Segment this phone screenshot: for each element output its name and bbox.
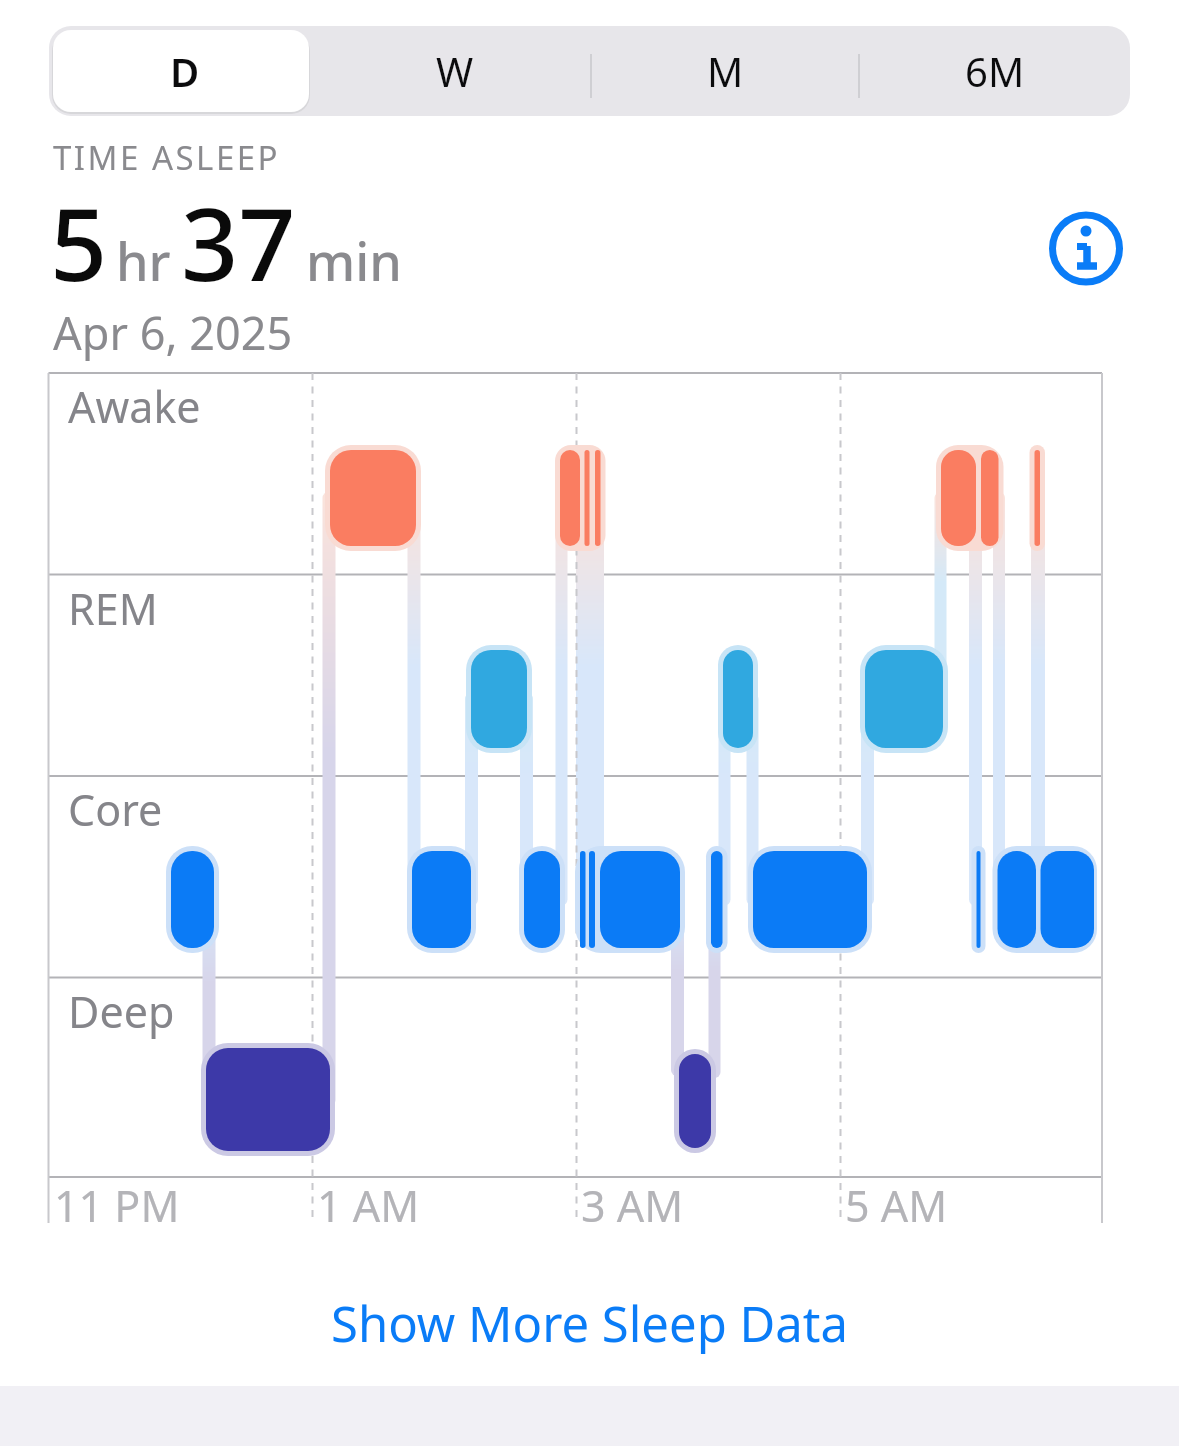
staticText: Apr 6, 2025 [53,302,293,363]
button[interactable]: W [320,26,590,116]
staticText: W [436,44,474,98]
staticText: 3 AM [581,1176,684,1235]
button[interactable]: D [49,26,320,116]
button[interactable]: M [590,26,860,116]
staticText: 11 PM [54,1176,180,1235]
staticText: Show More Sleep Data [331,1290,848,1357]
staticText: REM [68,579,158,638]
staticText: min [306,225,402,296]
button[interactable]: Show More Sleep Data [0,1288,1179,1358]
button[interactable]: 6M [860,26,1130,116]
staticText: Deep [68,982,175,1041]
staticText: M [707,44,744,98]
staticText: 1 AM [317,1176,420,1235]
button[interactable] [1046,208,1126,288]
staticText: Awake [68,377,201,436]
staticText: 37 [181,174,296,310]
staticText: 6M [965,44,1025,98]
staticText: hr [116,225,171,296]
staticText: TIME ASLEEP [53,135,281,180]
staticText: 5 AM [845,1176,948,1235]
staticText: D [170,44,200,98]
staticText: 5 [50,174,108,310]
staticText: Core [68,780,163,839]
